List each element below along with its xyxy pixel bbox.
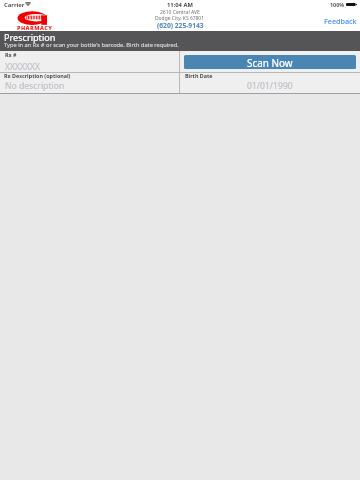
staticText: Scan Now bbox=[247, 56, 293, 69]
staticText: Feedback bbox=[324, 16, 357, 26]
staticText: Rx Description (optional) bbox=[4, 72, 71, 79]
other: Pharmacy logo bbox=[17, 10, 57, 30]
button[interactable]: Feedback bbox=[322, 15, 359, 27]
staticText: Type in an Rx # or scan your bottle's ba… bbox=[4, 41, 179, 49]
button[interactable]: Scan Now bbox=[184, 55, 356, 69]
staticText: Birth Date bbox=[185, 72, 213, 79]
button[interactable]: (620) 225-9143 bbox=[157, 21, 204, 30]
other: Wi-Fi bbox=[25, 2, 31, 6]
staticText: Carrier bbox=[4, 1, 25, 9]
button[interactable]: XXXXXXX bbox=[5, 61, 40, 73]
staticText: 11:04 AM bbox=[167, 1, 193, 9]
staticText: Prescription bbox=[4, 31, 56, 43]
other: Battery bbox=[346, 2, 357, 7]
staticText: (620) 225-9143 bbox=[157, 21, 204, 30]
staticText: Rx # bbox=[5, 51, 17, 58]
staticText: PHARMACY bbox=[17, 24, 53, 31]
button[interactable]: No description bbox=[5, 80, 65, 92]
staticText: 100% bbox=[330, 1, 345, 8]
staticText: 2610 Central AVE bbox=[160, 9, 200, 16]
staticText: 01/01/1990 bbox=[247, 80, 293, 92]
button[interactable]: Birth Date bbox=[180, 73, 360, 93]
staticText: Dodge City, KS 67801 bbox=[155, 15, 205, 22]
